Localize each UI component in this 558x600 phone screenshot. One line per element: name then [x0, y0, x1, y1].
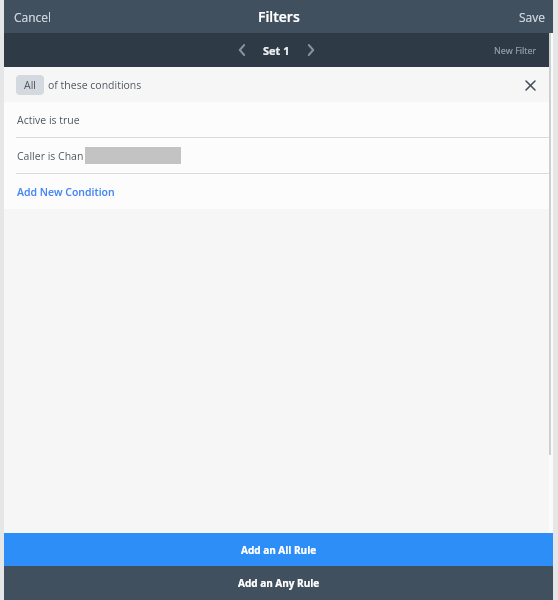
staticText: Active is true	[17, 113, 80, 127]
button[interactable]: Add an Any Rule	[4, 566, 553, 600]
staticText: Add an Any Rule	[238, 576, 320, 590]
staticText: Add New Condition	[17, 185, 115, 199]
staticText: Save	[519, 9, 545, 25]
button[interactable]: Cancel	[4, 0, 62, 33]
button[interactable]: Close	[513, 68, 547, 102]
button[interactable]: Add New Condition	[4, 174, 549, 209]
staticText: Add an All Rule	[241, 543, 317, 557]
button[interactable]: Caller is Chan	[4, 138, 549, 173]
staticText: Caller is Chan	[17, 149, 84, 163]
staticText: New Filter	[494, 44, 537, 56]
button[interactable]: Add an All Rule	[4, 533, 553, 566]
button[interactable]: Next set	[299, 38, 323, 62]
staticText: Filters	[258, 7, 300, 26]
button[interactable]: Previous set	[230, 38, 254, 62]
button[interactable]: New Filter	[482, 33, 549, 67]
staticText: All	[24, 78, 36, 92]
button[interactable]: Save	[509, 0, 553, 33]
staticText: of these conditions	[48, 78, 142, 92]
button[interactable]: Active is true	[4, 102, 549, 137]
staticText: Cancel	[14, 9, 52, 25]
button[interactable]: All	[16, 75, 44, 95]
staticText: Set 1	[263, 43, 290, 58]
